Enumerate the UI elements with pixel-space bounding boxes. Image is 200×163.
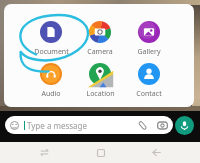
- button[interactable]: Camera: [157, 120, 168, 131]
- staticText: Type a message: [27, 120, 88, 131]
- button[interactable]: Contact: [125, 63, 173, 99]
- staticText: Camera: [87, 47, 113, 57]
- button[interactable]: Recents: [30, 142, 58, 163]
- staticText: Gallery: [137, 47, 161, 57]
- button[interactable]: Record voice message: [175, 116, 194, 135]
- button[interactable]: Home: [87, 142, 115, 163]
- staticText: Contact: [136, 89, 162, 99]
- button[interactable]: Audio: [27, 63, 75, 99]
- staticText: Document: [34, 47, 69, 57]
- button[interactable]: Location: [76, 63, 124, 99]
- staticText: Location: [86, 89, 115, 99]
- button[interactable]: Attach: [137, 120, 148, 131]
- staticText: Audio: [41, 89, 61, 99]
- button[interactable]: Back: [142, 142, 170, 163]
- button[interactable]: Camera: [76, 21, 124, 57]
- button[interactable]: Document: [27, 21, 75, 57]
- button[interactable]: Gallery: [125, 21, 173, 57]
- button[interactable]: Type a message: [5, 116, 173, 134]
